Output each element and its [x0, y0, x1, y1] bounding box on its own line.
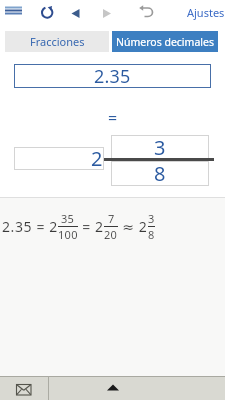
button[interactable]	[96, 376, 130, 400]
staticText: 20	[104, 227, 118, 242]
staticText: 8	[148, 227, 155, 242]
staticText: 2	[91, 145, 103, 168]
staticText: 2.35	[94, 64, 131, 88]
staticText: 8	[154, 160, 166, 185]
button[interactable]	[39, 4, 56, 21]
staticText: Ajustes	[187, 5, 225, 20]
staticText: ≈ 2	[118, 217, 148, 236]
staticText: =	[108, 107, 118, 123]
staticText: = 2	[78, 217, 104, 236]
button[interactable]: 2	[14, 147, 104, 170]
button[interactable]: Fracciones	[5, 31, 109, 52]
staticText: Números decimales	[116, 35, 214, 49]
button[interactable]: 3	[111, 135, 209, 159]
button[interactable]	[136, 3, 156, 21]
staticText: 7	[108, 211, 115, 226]
button[interactable]: 8	[111, 161, 209, 186]
button[interactable]	[67, 4, 85, 22]
staticText: 3	[148, 211, 155, 226]
button[interactable]: Ajustes	[183, 3, 225, 21]
button[interactable]: 2.35	[14, 64, 211, 88]
staticText: 3	[154, 134, 166, 158]
button[interactable]	[3, 3, 25, 21]
button[interactable]	[98, 4, 116, 22]
staticText: 100	[58, 227, 78, 242]
staticText: 35	[61, 211, 75, 226]
button[interactable]: Números decimales	[112, 31, 218, 52]
button[interactable]	[10, 380, 38, 400]
staticText: Fracciones	[30, 34, 85, 49]
staticText: 2.35 = 2	[2, 217, 58, 236]
